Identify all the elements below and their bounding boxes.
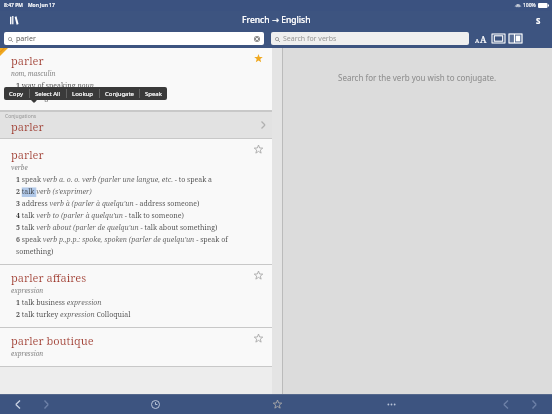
button[interactable]: Back [12,399,23,410]
staticText: something) [16,247,54,257]
button[interactable]: History [150,399,161,410]
staticText: 8:47 PM [4,2,23,9]
button[interactable]: Clear [254,36,260,42]
staticText: 2 language noun [16,93,71,103]
staticText: A [475,37,480,45]
staticText: Lookup [72,90,94,98]
button[interactable]: Search for verbs [271,32,469,45]
button[interactable]: Copy [4,87,29,100]
staticText: 5 talk verb about (parler de quelqu'un -… [16,223,218,233]
button[interactable]: Forward [41,399,52,410]
button[interactable]: Sync [530,12,546,28]
button[interactable]: Text size [475,33,487,45]
staticText: expression [11,286,44,295]
staticText: 1 way of speaking noun [16,81,95,91]
button[interactable]: Favorite [254,145,263,154]
staticText: 2 talk verb (s'exprimer) [16,187,92,197]
staticText: 4 talk verb to (parler à quelqu'un - tal… [16,211,184,221]
staticText: Speak [145,90,162,98]
staticText: parler [11,53,44,68]
button[interactable]: parler affaires [0,265,283,328]
staticText: parler boutique [11,333,94,348]
staticText: A [480,33,487,45]
staticText: Copy [9,90,24,98]
staticText: nom, masculin [11,69,56,78]
button[interactable]: Forward [529,399,540,410]
staticText: Search for the verb you wish to conjugat… [338,72,497,83]
staticText: Select All [35,90,61,98]
button[interactable]: Speak [140,87,167,100]
staticText: Mon Jun 17 [28,2,55,9]
staticText: parler [16,34,36,44]
button[interactable]: parler [0,48,283,111]
button[interactable]: Conjugate [100,87,139,100]
button[interactable]: Favorite [254,271,263,280]
button[interactable]: Single view [491,33,506,44]
staticText: parler [11,147,44,162]
staticText: S [536,15,541,26]
button[interactable]: Select All [30,87,66,100]
staticText: expression [11,349,44,358]
button[interactable]: More [386,399,397,410]
button[interactable]: Lookup [67,87,99,100]
button[interactable]: Favorites [272,399,283,410]
button[interactable]: parler [4,32,264,45]
button[interactable]: Back [500,399,511,410]
staticText: 1 speak verb a. o. o. verb (parler une l… [16,175,213,185]
button[interactable]: Conjugations [0,111,283,139]
staticText: parler [11,119,44,134]
staticText: Conjugate [105,90,134,98]
staticText: 2 talk turkey expression Colloquial [16,310,131,320]
staticText: Search for verbs [283,34,337,44]
button[interactable]: parler boutique [0,328,283,367]
staticText: 100% [523,2,536,9]
button[interactable]: Favorite [254,54,263,63]
staticText: verbe [11,163,28,172]
staticText: 1 talk business expression [16,298,102,308]
button[interactable]: Split view [508,33,523,44]
staticText: 3 address verb à (parler à quelqu'un - a… [16,199,200,209]
button[interactable]: parler [0,139,283,265]
button[interactable]: Favorite [254,334,263,343]
button[interactable]: Library [6,12,22,28]
staticText: 6 speak verb p.,p.p.: spoke, spoken (par… [16,235,228,245]
staticText: Conjugations [5,113,37,120]
staticText: parler affaires [11,270,87,285]
staticText: French → English [242,14,311,26]
